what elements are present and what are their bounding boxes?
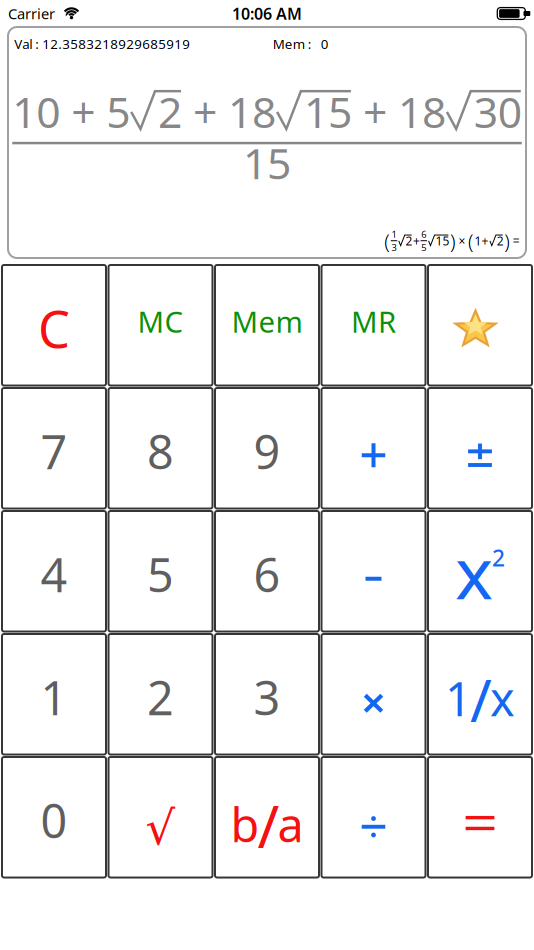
staticText: MC: [137, 302, 183, 341]
staticText: Mem :: [273, 35, 312, 53]
staticText: =: [513, 233, 520, 249]
staticText: 7: [40, 420, 67, 482]
staticText: 15: [304, 83, 352, 140]
staticText: 3: [253, 666, 280, 728]
staticText: +: [193, 83, 217, 140]
staticText: +: [71, 83, 95, 140]
button[interactable]: [428, 265, 532, 385]
staticText: 1: [40, 666, 67, 728]
staticText: 2: [497, 233, 504, 249]
button[interactable]: √: [108, 757, 212, 877]
staticText: 30: [474, 83, 522, 140]
staticText: 1: [391, 228, 396, 240]
button[interactable]: 1: [2, 634, 106, 754]
staticText: 15: [243, 134, 291, 191]
staticText: ): [450, 227, 456, 254]
staticText: (: [468, 227, 474, 254]
staticText: 8: [147, 420, 174, 482]
staticText: 15: [435, 233, 449, 249]
staticText: Mem: [231, 302, 302, 341]
staticText: /: [257, 786, 279, 864]
button[interactable]: C: [2, 265, 106, 385]
staticText: 2: [158, 83, 182, 140]
button[interactable]: 9: [215, 388, 319, 508]
button[interactable]: 3: [215, 634, 319, 754]
button[interactable]: MC: [108, 265, 212, 385]
staticText: a: [277, 793, 303, 855]
staticText: MR: [351, 302, 396, 341]
staticText: ): [504, 227, 510, 254]
staticText: 5: [421, 241, 426, 254]
button[interactable]: [321, 757, 425, 877]
staticText: 2: [147, 666, 174, 728]
staticText: 2: [406, 233, 413, 249]
staticText: 9: [253, 420, 280, 482]
button[interactable]: Mem: [215, 265, 319, 385]
staticText: x: [490, 667, 515, 729]
staticText: 2: [492, 543, 505, 573]
button[interactable]: [321, 388, 425, 508]
staticText: b: [230, 793, 259, 855]
staticText: 5: [106, 83, 130, 140]
staticText: 10:06 AM: [232, 3, 302, 24]
staticText: 0: [321, 35, 329, 53]
staticText: x: [455, 523, 493, 619]
staticText: 18: [228, 83, 276, 140]
button[interactable]: 4: [2, 511, 106, 631]
staticText: Carrier: [8, 4, 55, 23]
button[interactable]: 2: [108, 634, 212, 754]
staticText: 10: [12, 83, 60, 140]
button[interactable]: 8: [108, 388, 212, 508]
button[interactable]: MR: [321, 265, 425, 385]
button[interactable]: [321, 511, 425, 631]
staticText: /: [470, 660, 492, 738]
staticText: 1+: [474, 233, 488, 249]
button[interactable]: x: [428, 511, 532, 631]
staticText: 6: [421, 228, 426, 240]
staticText: 1: [445, 667, 472, 729]
staticText: C: [38, 295, 70, 362]
staticText: √: [145, 802, 175, 855]
staticText: 18: [398, 83, 446, 140]
staticText: Val : 12.3583218929685919: [14, 35, 190, 53]
staticText: 5: [147, 543, 174, 605]
staticText: 3: [391, 241, 396, 254]
button[interactable]: 0: [2, 757, 106, 877]
button[interactable]: [321, 634, 425, 754]
staticText: +: [363, 83, 387, 140]
staticText: (: [384, 227, 390, 254]
button[interactable]: b: [215, 757, 319, 877]
staticText: ×: [458, 233, 465, 249]
button[interactable]: [428, 757, 532, 877]
button[interactable]: 1: [428, 634, 532, 754]
staticText: 0: [40, 789, 67, 851]
button[interactable]: [428, 388, 532, 508]
button[interactable]: 7: [2, 388, 106, 508]
staticText: 6: [253, 543, 280, 605]
staticText: +: [413, 233, 420, 249]
button[interactable]: 5: [108, 511, 212, 631]
button[interactable]: 6: [215, 511, 319, 631]
staticText: 4: [40, 543, 67, 605]
